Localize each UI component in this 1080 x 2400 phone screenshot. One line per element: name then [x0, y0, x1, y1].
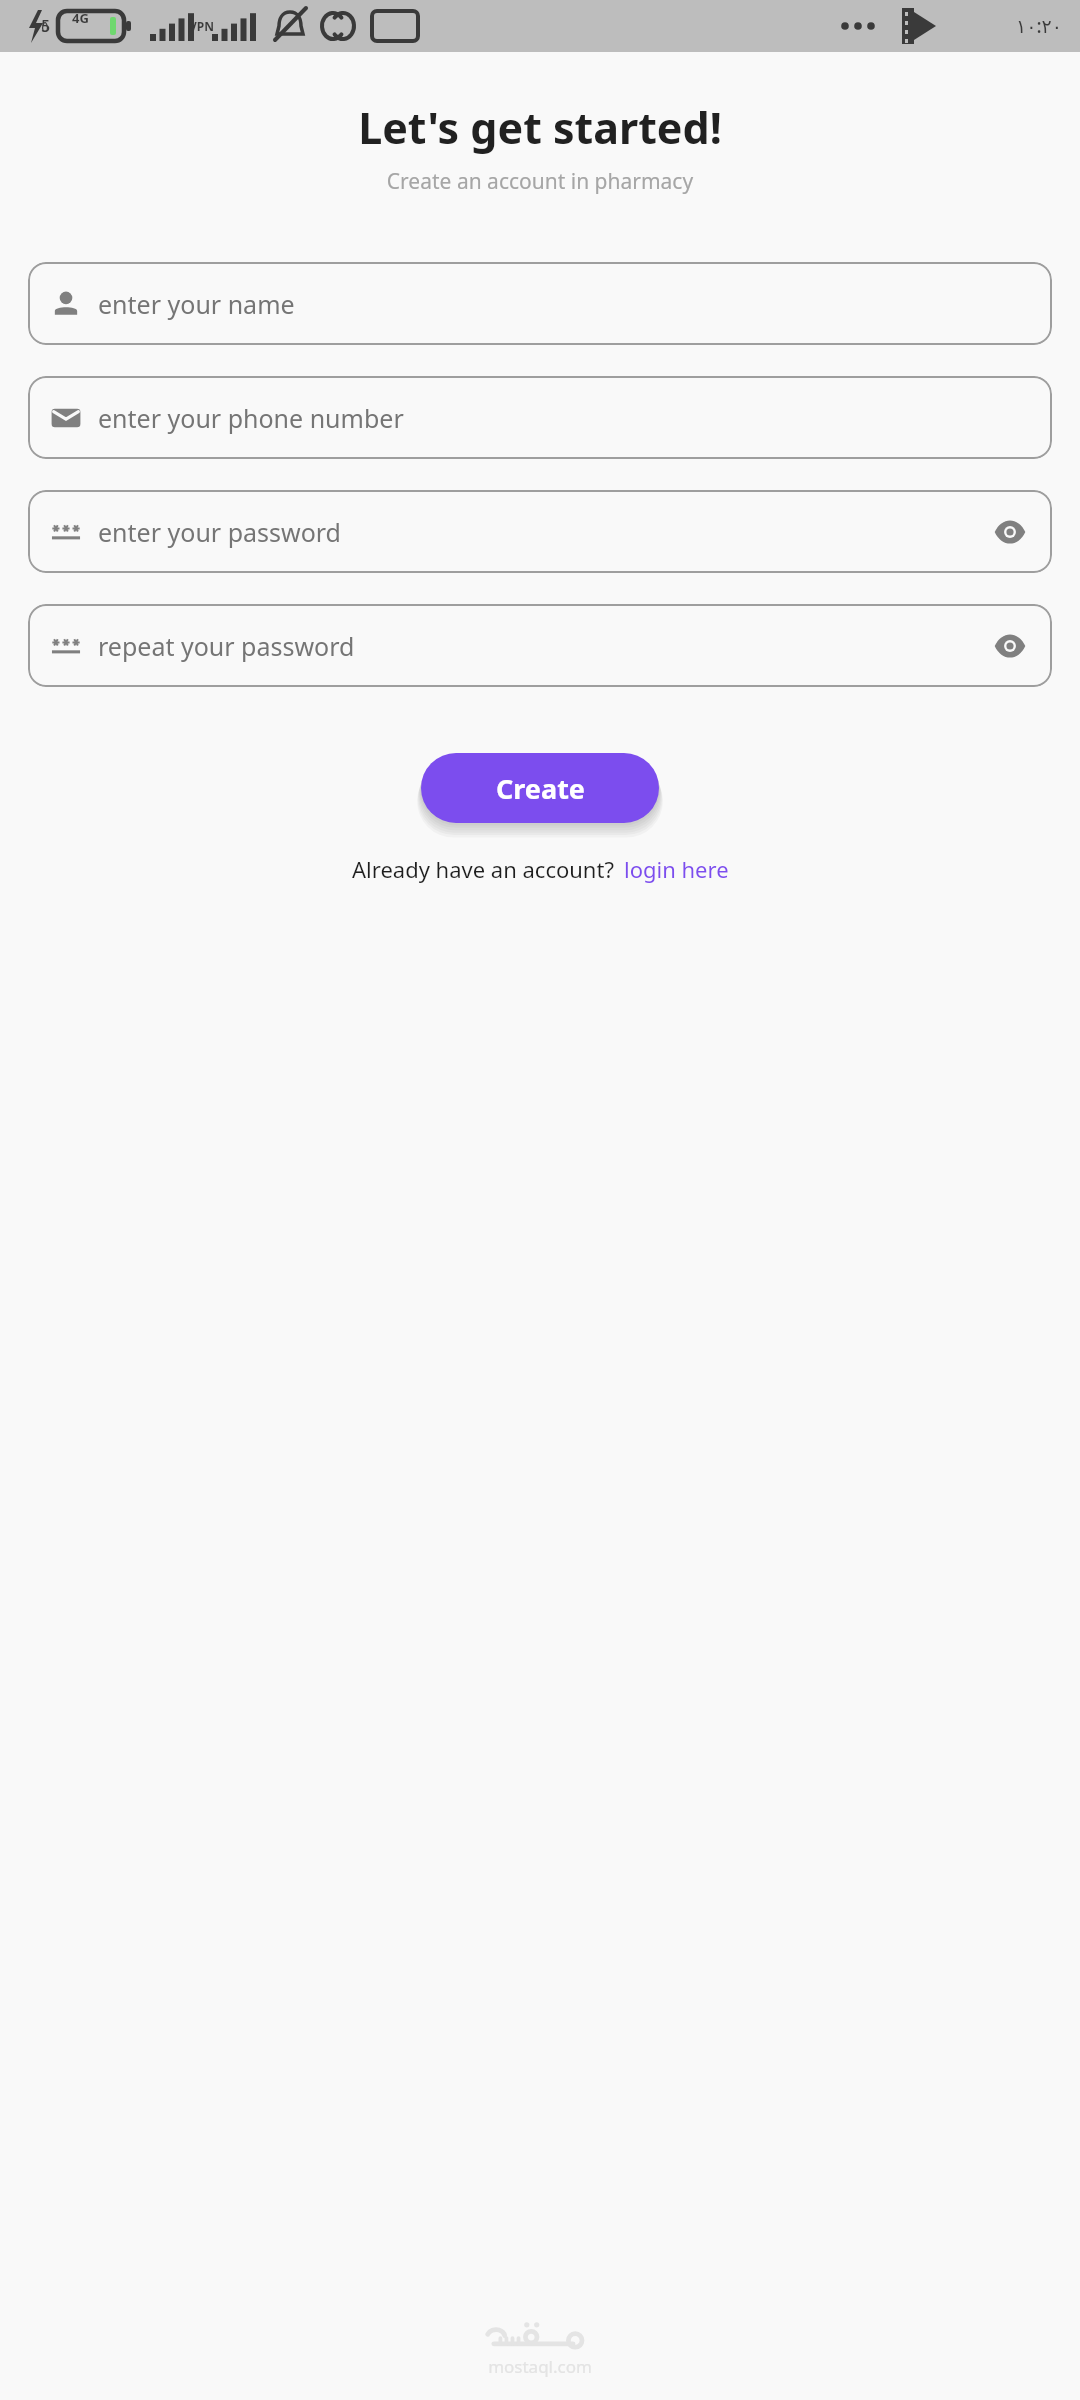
staticText: ٥	[41, 18, 50, 35]
staticText: mostaql.com	[488, 2355, 592, 2378]
button[interactable]: enter your password	[28, 490, 1052, 573]
button[interactable]: Show password	[990, 512, 1030, 552]
button[interactable]: repeat your password	[28, 604, 1052, 687]
staticText: Already have an account?	[352, 854, 614, 884]
staticText: Let's get started!	[0, 98, 1080, 157]
staticText: enter your name	[98, 287, 295, 321]
staticText: VPN	[189, 18, 215, 34]
staticText: 5	[41, 15, 51, 37]
staticText: repeat your password	[98, 629, 355, 663]
staticText: login here	[624, 854, 729, 884]
staticText: ١٠:٢٠	[1016, 13, 1062, 39]
staticText: 4G	[72, 9, 89, 27]
button[interactable]: Create	[421, 753, 659, 823]
button[interactable]: enter your phone number	[28, 376, 1052, 459]
staticText: enter your phone number	[98, 401, 404, 435]
staticText: enter your password	[98, 515, 341, 549]
staticText: Create an account in pharmacy	[0, 167, 1080, 196]
button[interactable]: enter your name	[28, 262, 1052, 345]
button[interactable]: login here	[624, 854, 729, 884]
button[interactable]: Show password	[990, 626, 1030, 666]
staticText: Create	[496, 770, 585, 807]
